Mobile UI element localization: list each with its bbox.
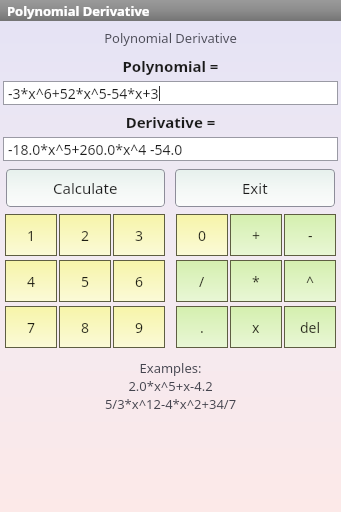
staticText: . (200, 318, 204, 337)
staticText: -18.0*x^5+260.0*x^4 -54.0 (8, 140, 183, 159)
button[interactable]: 8 (59, 306, 111, 348)
staticText: 2 (81, 226, 90, 245)
staticText: Polynomial Derivative (7, 2, 150, 20)
button[interactable]: / (176, 260, 228, 302)
staticText: 2.0*x^5+x-4.2 (0, 377, 341, 395)
staticText: Polynomial Derivative (0, 29, 341, 47)
button[interactable]: 1 (5, 214, 57, 256)
staticText: 5/3*x^12-4*x^2+34/7 (0, 395, 341, 413)
staticText: Polynomial = (0, 56, 341, 76)
button[interactable]: x (230, 306, 282, 348)
button[interactable]: - (284, 214, 336, 256)
button[interactable]: 6 (113, 260, 165, 302)
button[interactable]: . (176, 306, 228, 348)
staticText: 6 (135, 272, 144, 291)
button[interactable]: -3*x^6+52*x^5-54*x+3 (3, 81, 338, 105)
staticText: 8 (81, 318, 90, 337)
staticText: 1 (27, 226, 36, 245)
staticText: + (252, 226, 261, 245)
button[interactable]: Exit (175, 169, 335, 207)
button[interactable]: 2 (59, 214, 111, 256)
button[interactable]: 4 (5, 260, 57, 302)
staticText: Derivative = (0, 112, 341, 132)
staticText: 4 (27, 272, 36, 291)
button[interactable]: + (230, 214, 282, 256)
button[interactable]: del (284, 306, 336, 348)
button[interactable]: 0 (176, 214, 228, 256)
button[interactable]: 3 (113, 214, 165, 256)
staticText: / (199, 272, 205, 291)
staticText: Exit (242, 178, 268, 198)
staticText: * (252, 272, 260, 291)
button[interactable]: ^ (284, 260, 336, 302)
staticText: 7 (27, 318, 36, 337)
staticText: x (252, 318, 260, 337)
staticText: 3 (135, 226, 144, 245)
button[interactable]: 5 (59, 260, 111, 302)
staticText: -3*x^6+52*x^5-54*x+3 (8, 84, 159, 103)
staticText: - (308, 226, 313, 245)
staticText: ^ (306, 272, 315, 291)
staticText: 5 (81, 272, 90, 291)
button[interactable]: Calculate (6, 169, 165, 207)
button[interactable]: -18.0*x^5+260.0*x^4 -54.0 (3, 137, 338, 161)
staticText: del (300, 318, 321, 337)
staticText: 0 (198, 226, 207, 245)
staticText: 9 (135, 318, 144, 337)
button[interactable]: 9 (113, 306, 165, 348)
staticText: Examples: (0, 359, 341, 377)
button[interactable]: * (230, 260, 282, 302)
staticText: Calculate (53, 178, 118, 198)
button[interactable]: 7 (5, 306, 57, 348)
